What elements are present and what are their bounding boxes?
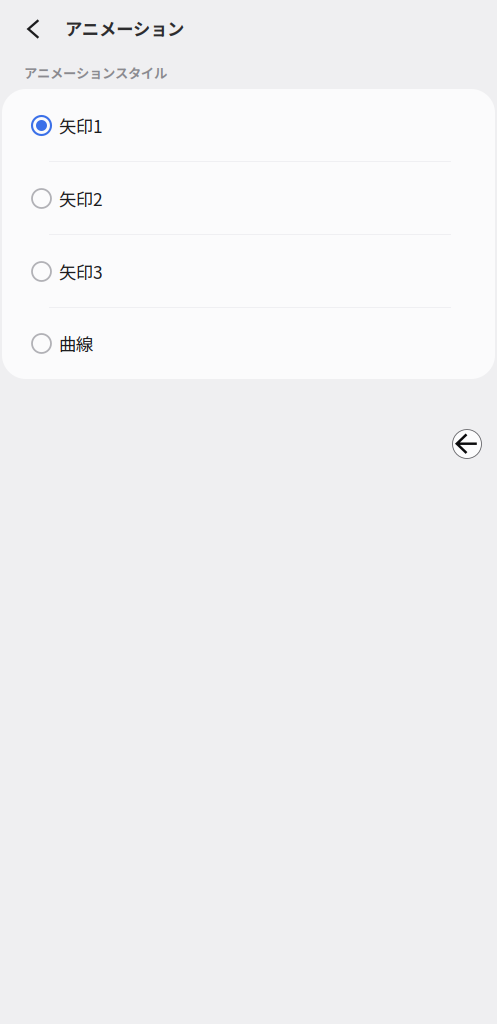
staticText: アニメーション <box>65 15 184 41</box>
staticText: 矢印1 <box>59 113 103 138</box>
button[interactable]: Back <box>0 11 65 47</box>
staticText: アニメーションスタイル <box>24 63 167 82</box>
button[interactable]: Back <box>445 422 489 466</box>
button[interactable]: 矢印2 <box>2 162 495 235</box>
button[interactable]: 矢印1 <box>2 89 495 162</box>
staticText: 曲線 <box>59 331 93 356</box>
button[interactable]: 矢印3 <box>2 235 495 308</box>
staticText: 矢印3 <box>59 259 103 284</box>
staticText: 矢印2 <box>59 186 103 211</box>
button[interactable]: 曲線 <box>2 308 495 379</box>
